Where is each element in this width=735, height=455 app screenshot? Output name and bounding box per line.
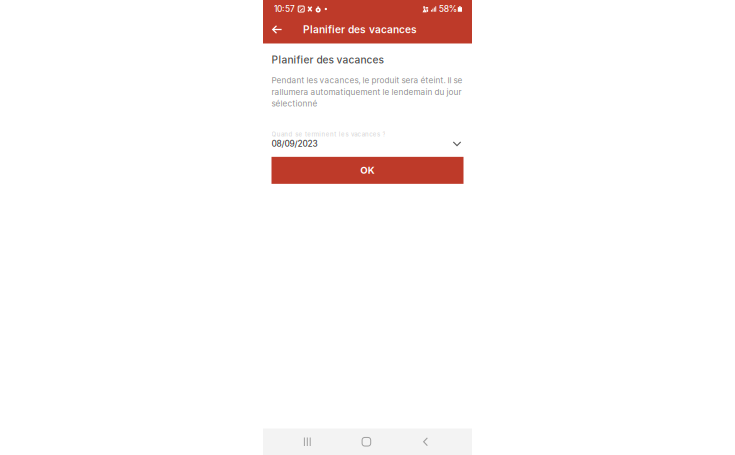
staticText: 10:57 bbox=[274, 4, 295, 14]
button[interactable]: Recent apps bbox=[287, 428, 327, 455]
button[interactable]: OK bbox=[271, 157, 463, 184]
button[interactable]: Back bbox=[405, 428, 445, 455]
staticText: Planifier des vacances bbox=[303, 23, 417, 36]
button[interactable]: Back bbox=[272, 17, 293, 41]
staticText: 08/09/2023 bbox=[271, 139, 317, 149]
staticText: Quand se terminent les vacances ? bbox=[271, 131, 385, 138]
staticText: Pendant les vacances, le produit sera ét… bbox=[271, 75, 462, 109]
staticText: OK bbox=[360, 164, 375, 176]
button[interactable]: Home bbox=[346, 428, 386, 455]
button[interactable]: 08/09/2023 bbox=[271, 139, 463, 149]
staticText: Planifier des vacances bbox=[271, 54, 383, 66]
staticText: 58% bbox=[439, 4, 457, 14]
